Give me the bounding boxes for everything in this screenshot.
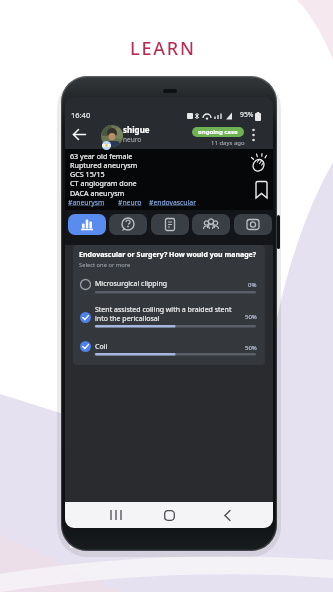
button[interactable] bbox=[234, 214, 272, 235]
staticText: DACA aneurysm bbox=[70, 188, 125, 198]
staticText: 11 days ago bbox=[211, 139, 245, 147]
staticText: into the pericallosal bbox=[95, 314, 160, 324]
button[interactable] bbox=[192, 214, 230, 235]
button[interactable] bbox=[73, 129, 86, 140]
button[interactable] bbox=[96, 502, 136, 528]
staticText: 63 year old female bbox=[70, 151, 133, 161]
staticText: GCS 15/15 bbox=[70, 169, 105, 179]
button[interactable] bbox=[75, 300, 261, 330]
button[interactable] bbox=[75, 335, 261, 359]
staticText: neuro bbox=[123, 135, 142, 144]
staticText: ongoing case bbox=[198, 128, 238, 136]
button[interactable] bbox=[251, 128, 256, 142]
staticText: Endovascular or Surgery? How would you m… bbox=[79, 250, 257, 260]
staticText: CT angiogram done bbox=[70, 178, 137, 188]
staticText: Ruptured aneurysm bbox=[70, 160, 138, 170]
staticText: shigue bbox=[123, 124, 150, 135]
button[interactable] bbox=[255, 181, 268, 199]
staticText: 16:40 bbox=[71, 110, 91, 120]
button[interactable]: ongoing case bbox=[192, 127, 244, 137]
staticText: LEARN bbox=[130, 36, 196, 61]
staticText: 50% bbox=[245, 313, 257, 321]
staticText: 95% bbox=[240, 110, 254, 119]
button[interactable] bbox=[250, 153, 268, 172]
button[interactable] bbox=[75, 273, 261, 295]
button[interactable] bbox=[68, 214, 106, 235]
staticText: Select one or more bbox=[79, 261, 131, 269]
button[interactable] bbox=[207, 502, 247, 528]
staticText: 50% bbox=[245, 344, 257, 352]
staticText: Stent assisted coiling with a braided st… bbox=[95, 305, 232, 315]
staticText: Coil bbox=[95, 342, 108, 352]
button[interactable] bbox=[149, 502, 189, 528]
button[interactable] bbox=[151, 214, 189, 235]
staticText: 0% bbox=[248, 281, 257, 289]
button[interactable] bbox=[109, 214, 147, 235]
staticText: Microsurgical clipping bbox=[95, 279, 168, 289]
